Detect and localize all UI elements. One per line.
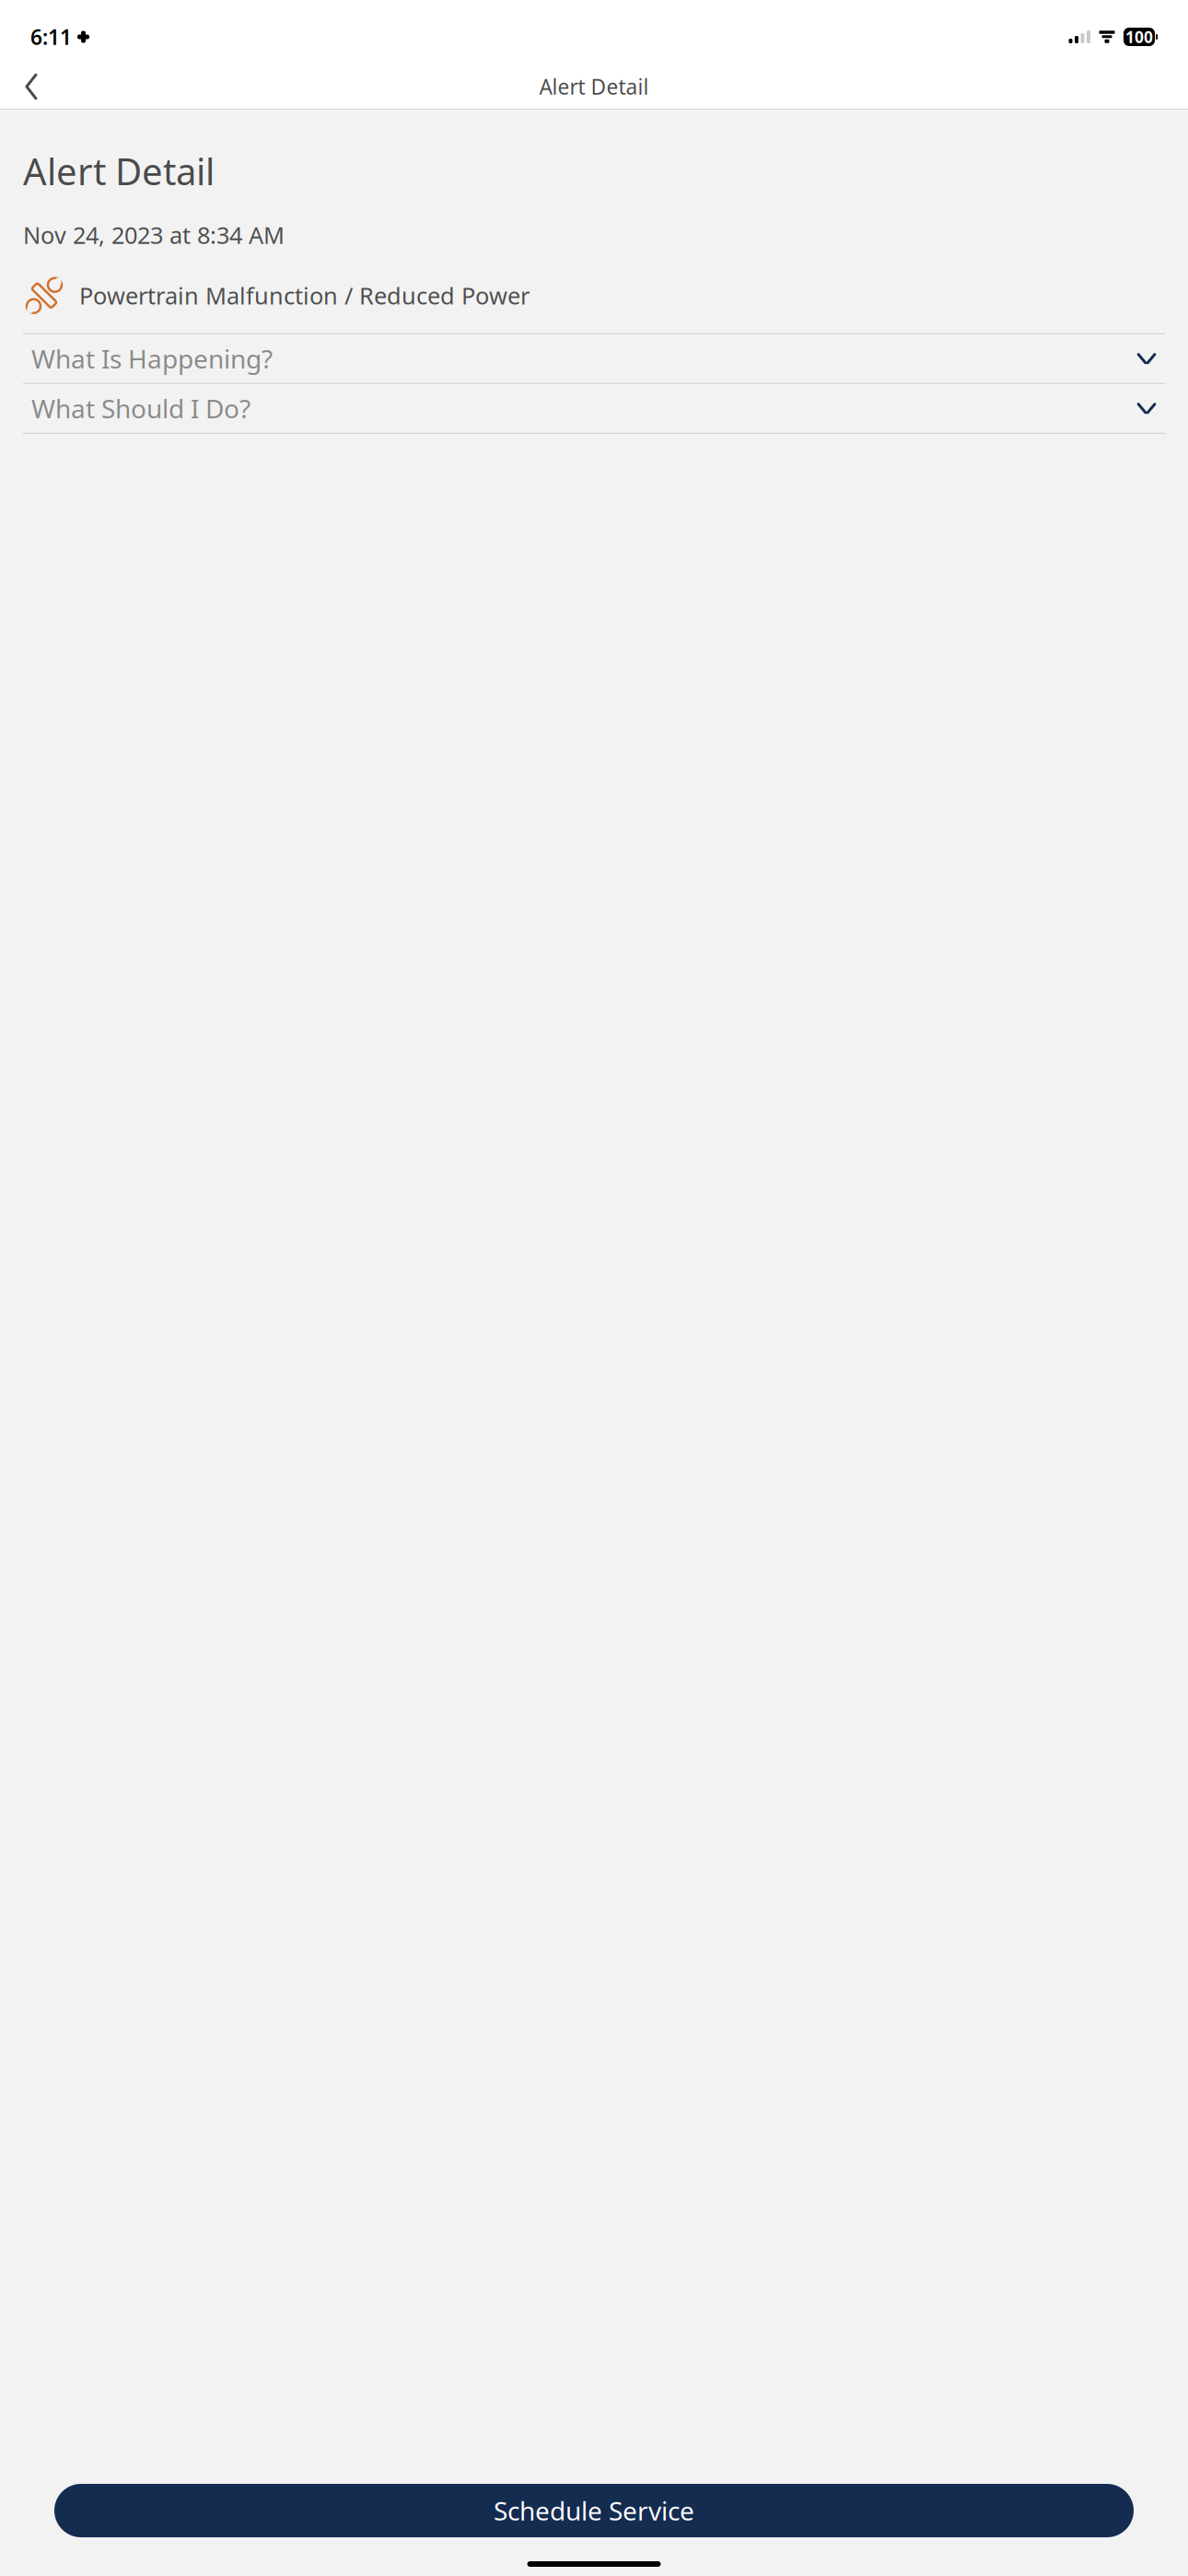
button[interactable]: What Should I Do? (23, 384, 1165, 433)
staticText: What Should I Do? (31, 391, 250, 426)
staticText: Powertrain Malfunction / Reduced Power (79, 280, 530, 311)
staticText: Schedule Service (494, 2493, 694, 2528)
button[interactable]: Back (6, 66, 57, 107)
staticText: What Is Happening? (31, 342, 273, 376)
button[interactable]: Schedule Service (54, 2484, 1134, 2537)
staticText: 6:11 (30, 23, 72, 51)
staticText: Nov 24, 2023 at 8:34 AM (23, 219, 285, 250)
staticText: 100 (1125, 26, 1153, 47)
button[interactable]: What Is Happening? (23, 334, 1165, 383)
staticText: Alert Detail (23, 146, 215, 195)
staticText: Alert Detail (539, 73, 649, 100)
